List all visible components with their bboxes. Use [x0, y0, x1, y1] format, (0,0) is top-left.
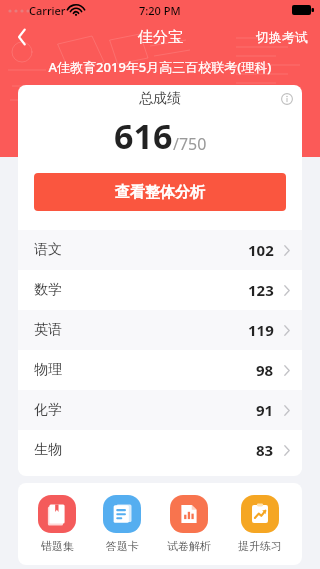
button[interactable]: 英语 [18, 310, 302, 350]
staticText: 提升练习 [238, 539, 282, 553]
staticText: 7:20 PM [139, 3, 181, 18]
staticText: 语文 [34, 241, 62, 259]
button[interactable]: 切换考试 [244, 23, 320, 51]
button[interactable]: 语文 [18, 230, 302, 270]
staticText: 试卷解析 [167, 539, 211, 553]
button[interactable]: 数学 [18, 270, 302, 310]
staticText: 切换考试 [256, 29, 308, 45]
staticText: 英语 [34, 321, 62, 339]
button[interactable]: Back [0, 20, 44, 54]
staticText: 616 [114, 113, 173, 159]
staticText: 答题卡 [106, 539, 139, 553]
button[interactable]: 错题集 [32, 491, 82, 557]
button[interactable]: 查看整体分析 [34, 173, 286, 211]
button[interactable]: 试卷解析 [161, 491, 217, 557]
staticText: Carrier [29, 3, 66, 18]
staticText: A佳教育2019年5月高三百校联考(理科) [0, 58, 320, 76]
button[interactable]: 物理 [18, 350, 302, 390]
staticText: 错题集 [41, 539, 74, 553]
button[interactable]: 化学 [18, 390, 302, 430]
staticText: 佳分宝 [138, 28, 183, 47]
staticText: 生物 [34, 441, 62, 459]
staticText: 83 [256, 440, 274, 460]
button[interactable]: 提升练习 [232, 491, 288, 557]
staticText: 98 [256, 360, 274, 380]
button[interactable]: 生物 [18, 430, 302, 470]
staticText: 119 [248, 320, 274, 340]
staticText: 数学 [34, 281, 62, 299]
staticText: 总成绩 [139, 90, 181, 108]
button[interactable]: 答题卡 [97, 491, 147, 557]
staticText: 化学 [34, 401, 62, 419]
button[interactable]: Info [272, 85, 302, 113]
staticText: 123 [248, 280, 274, 300]
staticText: 91 [256, 400, 274, 420]
staticText: 物理 [34, 361, 62, 379]
staticText: 102 [248, 240, 274, 260]
staticText: /750 [173, 133, 207, 155]
staticText: 查看整体分析 [115, 183, 205, 202]
